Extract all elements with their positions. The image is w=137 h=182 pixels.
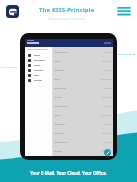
button[interactable] — [28, 73, 52, 78]
button[interactable] — [28, 78, 52, 83]
button[interactable] — [54, 147, 111, 156]
button[interactable] — [54, 93, 111, 102]
button[interactable] — [54, 129, 111, 138]
button[interactable] — [54, 138, 111, 147]
button[interactable] — [54, 75, 111, 84]
button[interactable] — [28, 53, 52, 58]
staticText: The KISS-Principle — [39, 6, 95, 14]
button[interactable] — [28, 63, 52, 68]
button[interactable] — [54, 47, 111, 57]
staticText: Your E-Mail. Your Cloud. Your Office. — [30, 170, 107, 176]
button[interactable]: Compose mail — [104, 149, 111, 156]
button[interactable] — [28, 68, 52, 73]
button[interactable] — [54, 66, 111, 75]
button[interactable]: Menu — [115, 2, 133, 20]
button[interactable] — [54, 111, 111, 120]
button[interactable] — [28, 58, 52, 63]
button[interactable] — [54, 57, 111, 66]
button[interactable] — [54, 84, 111, 93]
staticText: Keep it simple and smart — [48, 17, 86, 21]
button[interactable] — [54, 120, 111, 129]
button[interactable]: App logo — [6, 5, 19, 18]
button[interactable] — [54, 102, 111, 111]
